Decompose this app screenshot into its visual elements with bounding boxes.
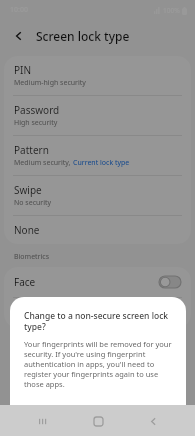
staticText: High security bbox=[14, 118, 58, 128]
button[interactable]: Swipe bbox=[4, 176, 191, 215]
button[interactable]: Cancel bbox=[10, 403, 97, 429]
button[interactable]: Pattern bbox=[4, 136, 191, 175]
staticText: Pattern bbox=[14, 143, 49, 157]
button[interactable]: Home bbox=[85, 408, 111, 434]
staticText: Current lock type bbox=[73, 158, 130, 168]
staticText: No security bbox=[14, 198, 52, 208]
staticText: Cancel bbox=[39, 410, 68, 422]
staticText: None bbox=[14, 223, 40, 237]
staticText: Biometrics bbox=[14, 252, 50, 262]
staticText: PIN bbox=[14, 63, 32, 77]
staticText: Face bbox=[14, 275, 159, 289]
button[interactable]: None bbox=[4, 216, 191, 244]
staticText: Your fingerprints will be removed for yo… bbox=[24, 339, 174, 389]
staticText: Medium-high security bbox=[14, 78, 86, 88]
staticText: Fingerprints bbox=[14, 306, 159, 320]
button[interactable]: Face bbox=[4, 267, 191, 297]
button[interactable]: PIN bbox=[4, 56, 191, 95]
button[interactable]: Back bbox=[140, 408, 166, 434]
staticText: Screen lock type bbox=[36, 28, 130, 44]
staticText: Change to a non-secure screen lock type? bbox=[24, 310, 174, 332]
button[interactable]: Fingerprints bbox=[4, 298, 191, 328]
button[interactable]: Password bbox=[4, 96, 191, 135]
button[interactable]: Remove data bbox=[98, 403, 186, 429]
button[interactable]: Recents bbox=[29, 408, 55, 434]
staticText: Swipe bbox=[14, 183, 42, 197]
staticText: Remove data bbox=[114, 410, 171, 422]
staticText: Medium security, bbox=[14, 158, 73, 168]
button[interactable]: Back bbox=[8, 25, 30, 47]
staticText: Password bbox=[14, 103, 60, 117]
